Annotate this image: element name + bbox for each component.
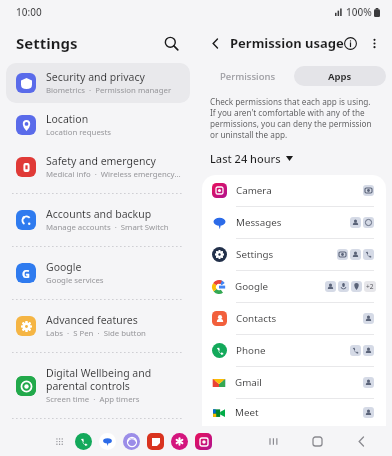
button[interactable]: Google: [202, 270, 386, 302]
staticText: Apps: [328, 70, 352, 83]
button[interactable]: Phone: [75, 433, 92, 450]
staticText: Location: [46, 112, 89, 126]
button[interactable]: Accounts and backup: [6, 200, 190, 240]
staticText: G: [22, 266, 30, 281]
staticText: Camera: [236, 184, 363, 197]
staticText: Location requests: [46, 127, 112, 138]
button[interactable]: Messages: [99, 433, 116, 450]
staticText: Medical info · Wireless emergency alerts: [46, 169, 182, 180]
button[interactable]: Search: [158, 30, 184, 56]
button[interactable]: Messages: [202, 206, 386, 238]
staticText: +2: [366, 282, 374, 291]
button[interactable]: Advanced features: [6, 306, 190, 346]
staticText: Permission usage: [230, 34, 344, 52]
button[interactable]: Apps: [294, 66, 386, 86]
button[interactable]: Security and privacy: [6, 63, 190, 103]
button[interactable]: Back: [204, 32, 226, 54]
button[interactable]: Meet: [202, 398, 386, 426]
staticText: Settings: [16, 33, 78, 53]
button[interactable]: Settings: [202, 238, 386, 270]
staticText: Contacts: [236, 312, 363, 325]
staticText: Messages: [236, 216, 350, 229]
staticText: Google services: [46, 275, 104, 286]
button[interactable]: Safety and emergency: [6, 147, 190, 187]
button[interactable]: All apps: [52, 434, 68, 450]
button[interactable]: Recents: [264, 432, 282, 450]
button[interactable]: Information: [338, 31, 362, 55]
button[interactable]: Phone: [202, 334, 386, 366]
staticText: Security and privacy: [46, 70, 145, 84]
staticText: Screen time · App timers: [46, 394, 140, 405]
button[interactable]: Last 24 hours: [210, 149, 297, 168]
staticText: Permissions: [220, 70, 276, 83]
button[interactable]: Contacts: [202, 302, 386, 334]
button[interactable]: Home: [308, 432, 326, 450]
staticText: Manage accounts · Smart Switch: [46, 222, 169, 233]
staticText: Google: [235, 280, 325, 293]
button[interactable]: Digital Wellbeing and parental controls: [6, 359, 190, 412]
button[interactable]: Location: [6, 105, 190, 145]
staticText: Last 24 hours: [210, 151, 281, 166]
staticText: Check permissions that each app is using…: [210, 96, 378, 140]
button[interactable]: Back: [352, 432, 370, 450]
staticText: Accounts and backup: [46, 207, 152, 221]
staticText: Gmail: [235, 376, 363, 389]
button[interactable]: Camera: [195, 433, 212, 450]
button[interactable]: Gallery: [171, 433, 188, 450]
button[interactable]: Gmail: [202, 366, 386, 398]
button[interactable]: G: [6, 253, 190, 293]
staticText: Phone: [236, 344, 350, 357]
button[interactable]: Camera: [202, 175, 386, 206]
staticText: Google: [46, 260, 82, 274]
staticText: Settings: [236, 248, 337, 261]
staticText: 100%: [346, 5, 372, 19]
button[interactable]: Internet: [123, 433, 140, 450]
staticText: Advanced features: [46, 313, 138, 327]
button[interactable]: Samsung Notes: [147, 433, 164, 450]
button[interactable]: Permissions: [202, 66, 294, 86]
staticText: 10:00: [16, 5, 42, 19]
staticText: Digital Wellbeing and parental controls: [46, 366, 182, 393]
staticText: Safety and emergency: [46, 154, 156, 168]
staticText: Labs · S Pen · Side button: [46, 328, 146, 339]
staticText: Meet: [235, 406, 363, 419]
staticText: Biometrics · Permission manager: [46, 85, 172, 96]
button[interactable]: More options: [362, 31, 386, 55]
